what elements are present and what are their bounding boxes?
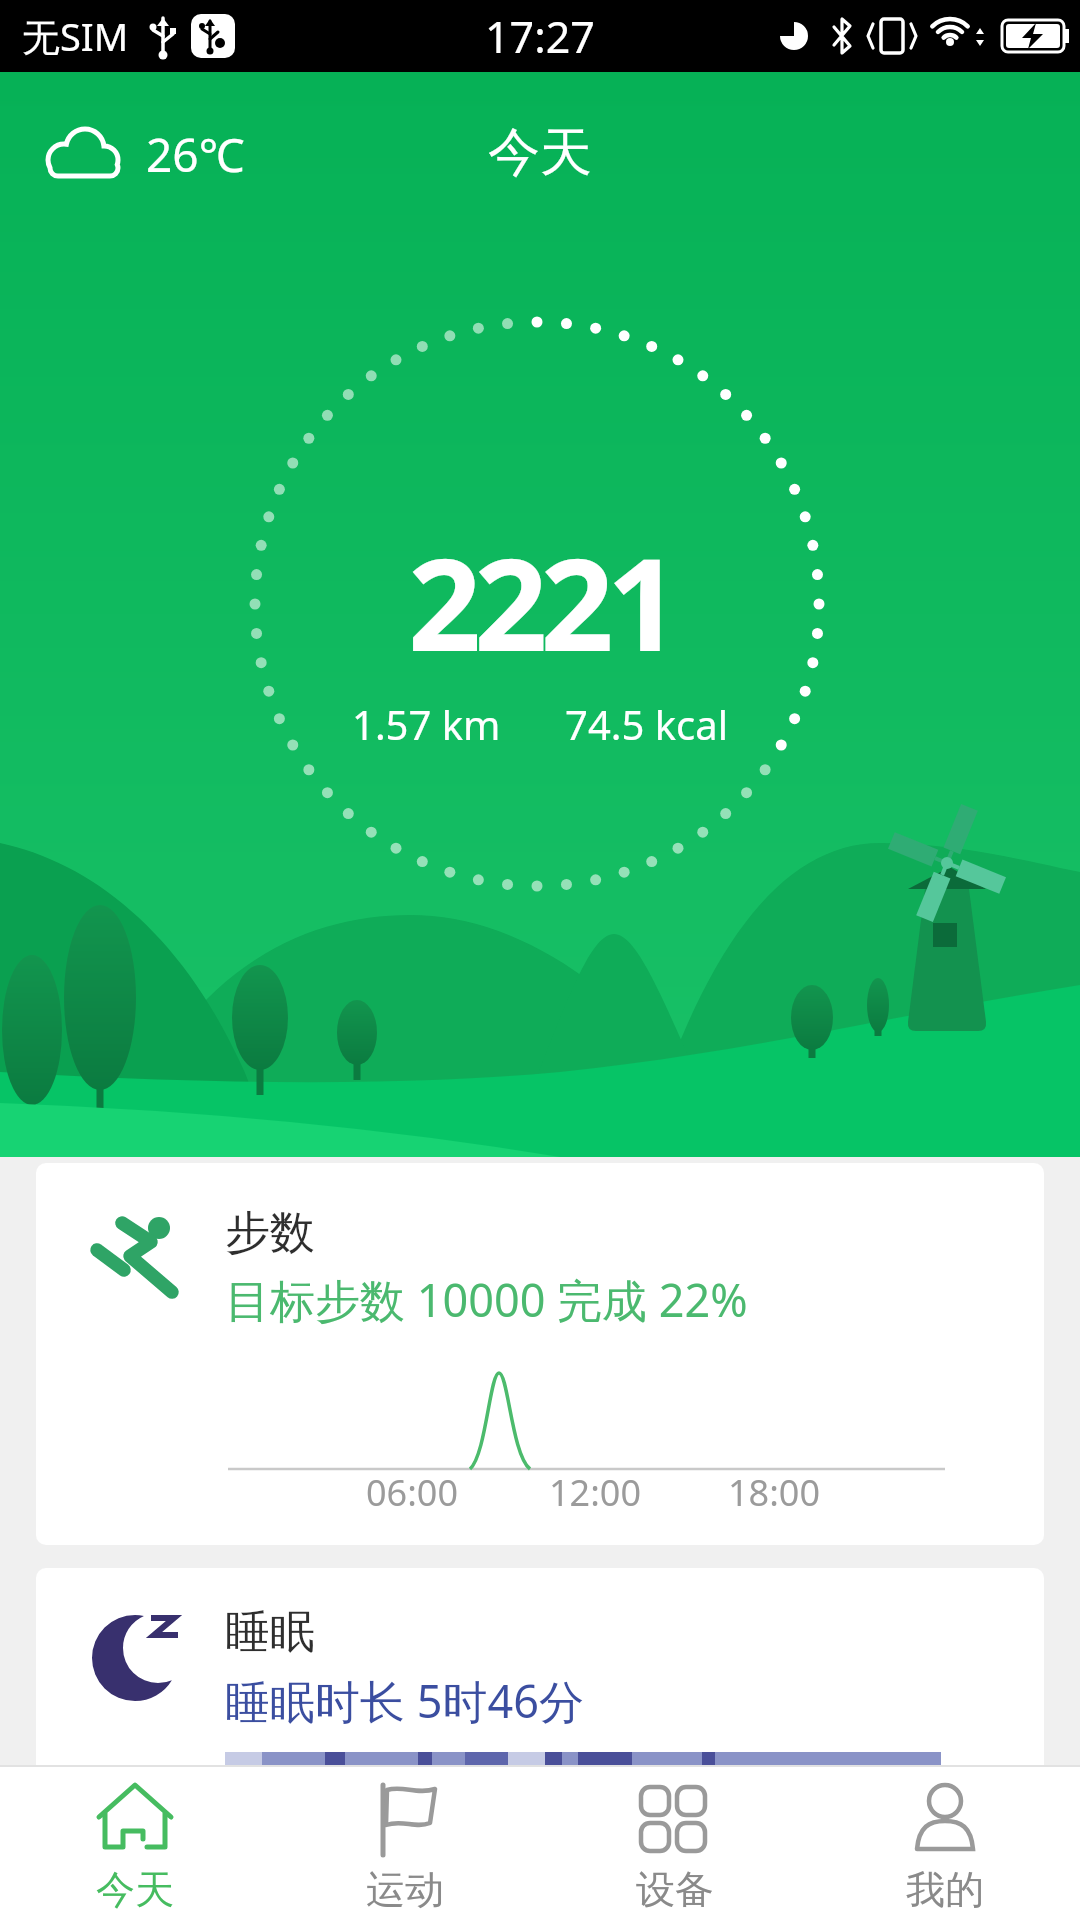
staticText: 06:00	[366, 1468, 459, 1517]
staticText: 睡眠	[225, 1604, 315, 1661]
staticText: 我的	[906, 1865, 984, 1914]
staticText: 74.5 kcal	[565, 697, 729, 751]
staticText: 步数	[225, 1205, 315, 1262]
staticText: 18:00	[728, 1468, 821, 1517]
button[interactable]: 我的	[810, 1767, 1080, 1920]
button[interactable]: 26℃	[40, 122, 245, 186]
staticText: 设备	[636, 1865, 714, 1914]
staticText: 睡眠时长 5时46分	[225, 1670, 584, 1731]
staticText: 17:27	[485, 7, 595, 66]
staticText: 1.57 km	[352, 697, 501, 751]
staticText: 目标步数 10000 完成 22%	[225, 1269, 748, 1330]
staticText: 今天	[96, 1865, 174, 1914]
staticText: 26℃	[146, 123, 245, 186]
staticText: 2221	[408, 514, 673, 688]
staticText: 今天	[488, 120, 592, 186]
button[interactable]: 设备	[540, 1767, 810, 1920]
staticText: 无SIM	[22, 10, 129, 62]
staticText: 运动	[366, 1865, 444, 1914]
button[interactable]: 睡眠	[36, 1568, 1044, 1765]
button[interactable]: 今天	[0, 1767, 270, 1920]
button[interactable]: 运动	[270, 1767, 540, 1920]
staticText: 12:00	[549, 1468, 642, 1517]
button[interactable]: 步数	[36, 1163, 1044, 1545]
